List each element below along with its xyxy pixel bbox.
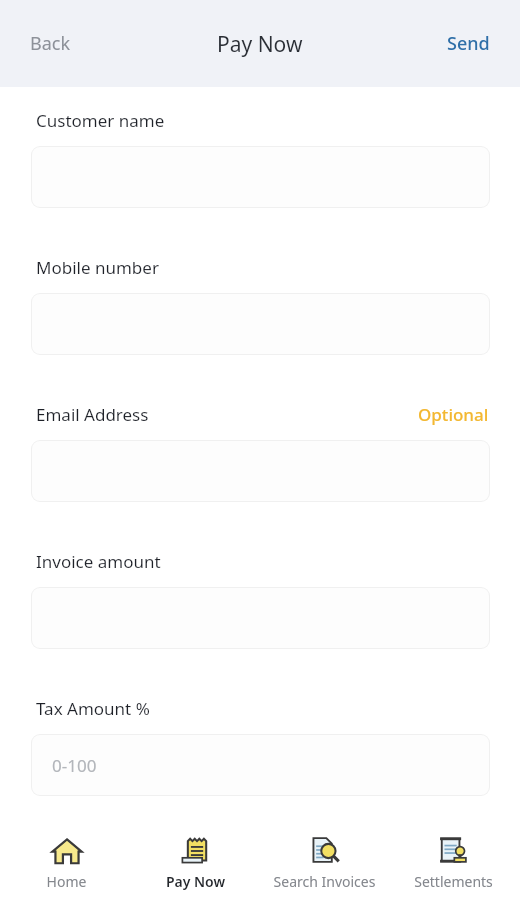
staticText: Tax Amount % [36,697,150,720]
other: Settlements [437,834,471,868]
button[interactable]: 0-100 [32,735,489,795]
staticText: Search Invoices [262,872,387,891]
staticText: Pay Now [133,872,258,891]
staticText: Notes [36,844,84,867]
staticText: Email Address [36,403,149,426]
button[interactable]: Settlements [391,830,516,895]
staticText: 0-100 [52,754,97,777]
other: Search Invoices [308,834,342,868]
other: Home [50,834,84,868]
button[interactable]: Home [4,830,129,895]
staticText: Send [447,31,490,56]
button[interactable]: Pay Now [133,830,258,895]
button[interactable]: Back [12,21,89,66]
button[interactable]: Search Invoices [262,830,387,895]
staticText: Optional [418,403,489,426]
button[interactable]: Send [429,21,508,66]
staticText: Pay Now [217,30,303,59]
staticText: Invoice amount [36,550,161,573]
staticText: Home [4,872,129,891]
staticText: Settlements [391,872,516,891]
staticText: Customer name [36,109,165,132]
staticText: Mobile number [36,256,159,279]
other: Pay Now [179,834,213,868]
staticText: Back [30,31,71,56]
